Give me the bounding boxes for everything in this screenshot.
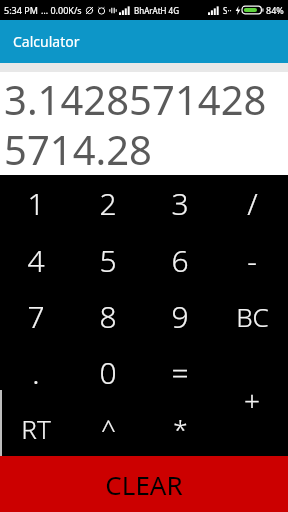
button[interactable]: CLEAR (0, 456, 288, 512)
staticText: RT (21, 411, 51, 446)
button[interactable]: BC (216, 288, 288, 344)
staticText: 5714.28 (4, 122, 288, 171)
staticText: ^ (101, 411, 116, 446)
staticText: … 0.00K/s (41, 4, 82, 16)
button[interactable]: 8 (72, 288, 144, 344)
button[interactable]: 1 (0, 175, 72, 232)
button[interactable]: 6 (144, 232, 216, 288)
staticText: 6 (171, 240, 189, 281)
staticText: BhArAtH 4G (134, 5, 179, 16)
button[interactable]: 2 (72, 175, 144, 232)
staticText: 7 (27, 296, 45, 337)
button[interactable]: 3 (144, 175, 216, 232)
button[interactable]: 9 (144, 288, 216, 344)
button[interactable]: - (216, 232, 288, 288)
staticText: 4 (27, 240, 45, 281)
staticText: / (247, 183, 258, 224)
staticText: BC (236, 299, 269, 334)
staticText: 1 (27, 183, 45, 224)
staticText: - (247, 240, 257, 281)
staticText: 84% (266, 4, 284, 16)
staticText: . (32, 352, 40, 393)
button[interactable]: 7 (0, 288, 72, 344)
button[interactable]: / (216, 175, 288, 232)
button[interactable]: = (144, 344, 216, 400)
staticText: CLEAR (105, 467, 183, 502)
button[interactable]: 4 (0, 232, 72, 288)
button[interactable]: * (144, 400, 216, 456)
staticText: 8 (99, 296, 117, 337)
staticText: 5:34 PM (4, 4, 38, 16)
staticText: 0 (99, 352, 117, 393)
staticText: S·· (223, 5, 232, 16)
staticText: Calculator (13, 32, 80, 51)
staticText: = (171, 352, 189, 393)
staticText: 5 (99, 240, 117, 281)
staticText: 3.1428571428 (4, 72, 288, 126)
button[interactable]: 0 (72, 344, 144, 400)
staticText: * (173, 411, 188, 446)
button[interactable]: 5 (72, 232, 144, 288)
staticText: 2 (99, 183, 117, 224)
button[interactable]: ^ (72, 400, 144, 456)
staticText: 9 (171, 296, 189, 337)
button[interactable]: RT (0, 400, 72, 456)
button[interactable]: + (216, 344, 288, 456)
staticText: 3 (171, 183, 189, 224)
staticText: + (244, 381, 260, 419)
button[interactable]: . (0, 344, 72, 400)
